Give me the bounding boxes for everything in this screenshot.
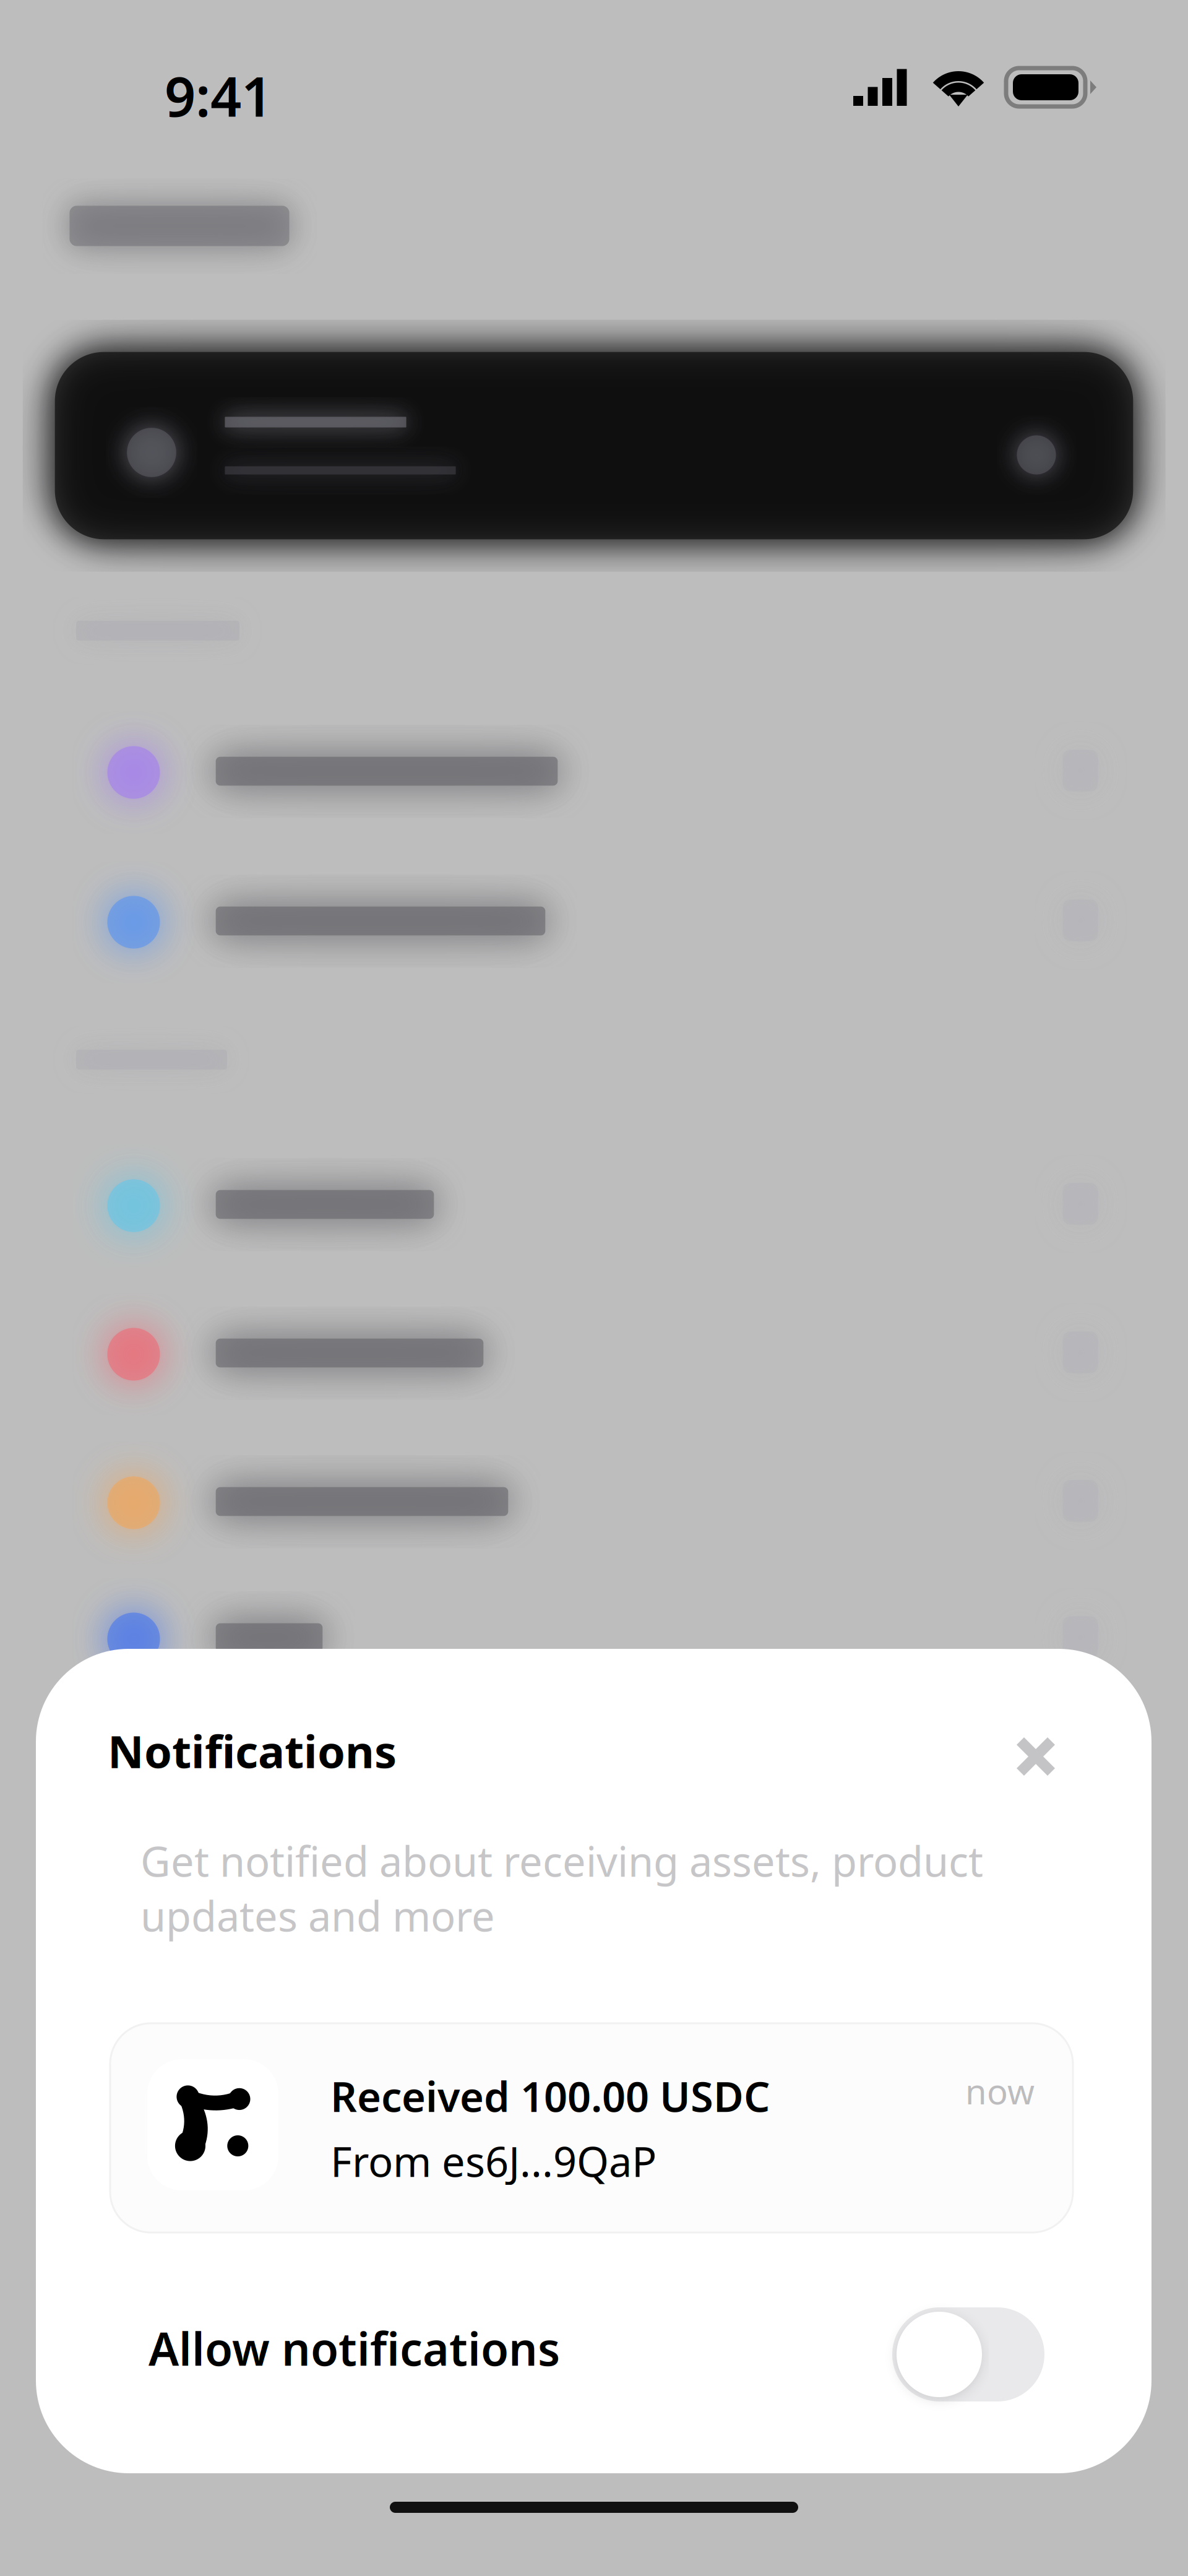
staticText: Allow notifications: [148, 2318, 560, 2378]
staticText: now: [965, 2068, 1035, 2114]
staticText: 9:41: [165, 59, 272, 132]
button[interactable]: Close: [990, 1711, 1082, 1802]
staticText: Get notified about receiving assets, pro…: [140, 1833, 983, 1943]
staticText: Received 100.00 USDC: [330, 2068, 770, 2123]
staticText: From es6J...9QaP: [330, 2133, 656, 2188]
staticText: Notifications: [108, 1721, 397, 1780]
button[interactable]: Allow notifications: [148, 2307, 1109, 2404]
